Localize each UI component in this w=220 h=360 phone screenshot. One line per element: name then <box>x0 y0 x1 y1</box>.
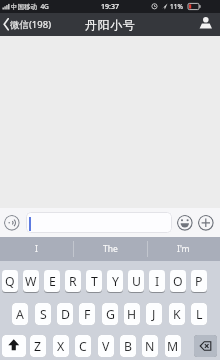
button[interactable]: Z <box>30 335 46 357</box>
button[interactable]: C <box>75 335 91 357</box>
button[interactable]: G <box>102 303 118 325</box>
button[interactable]: N <box>142 335 158 357</box>
button[interactable]: V <box>98 335 114 357</box>
staticText: The <box>103 243 118 255</box>
button[interactable]: P <box>191 270 207 292</box>
staticText: B <box>124 338 132 355</box>
button[interactable]: F <box>79 303 95 325</box>
button[interactable]: I'm <box>147 237 220 261</box>
staticText: R <box>69 273 77 290</box>
staticText: 微信(198) <box>10 18 52 31</box>
staticText: I'm <box>177 243 190 255</box>
button[interactable]: B <box>120 335 136 357</box>
button[interactable] <box>4 215 20 231</box>
staticText: 丹阳小号 <box>85 17 136 32</box>
button[interactable]: W <box>23 270 39 292</box>
staticText: Q <box>5 273 15 290</box>
staticText: Y <box>112 273 119 290</box>
staticText: G <box>106 306 115 323</box>
staticText: V <box>102 338 110 355</box>
button[interactable] <box>194 335 217 357</box>
button[interactable]: I <box>149 270 165 292</box>
staticText: N <box>145 338 155 355</box>
staticText: Z <box>34 338 42 355</box>
button[interactable]: L <box>191 303 207 325</box>
button[interactable]: R <box>65 270 81 292</box>
button[interactable]: U <box>128 270 144 292</box>
staticText: I <box>155 273 160 290</box>
button[interactable]: M <box>165 335 181 357</box>
staticText: 19:37 <box>101 2 119 12</box>
staticText: K <box>173 306 181 323</box>
staticText: O <box>173 273 183 290</box>
button[interactable]: The <box>74 237 147 261</box>
button[interactable]: Y <box>107 270 123 292</box>
button[interactable]: H <box>124 303 140 325</box>
staticText: W <box>25 273 37 290</box>
staticText: H <box>127 306 137 323</box>
staticText: J <box>152 306 156 323</box>
button[interactable] <box>198 215 214 231</box>
staticText: X <box>57 338 65 355</box>
button[interactable]: K <box>169 303 185 325</box>
staticText: P <box>195 273 203 290</box>
staticText: F <box>84 306 91 323</box>
staticText: L <box>196 306 203 323</box>
staticText: U <box>132 273 141 290</box>
staticText: D <box>61 306 70 323</box>
staticText: 11% <box>170 2 183 11</box>
staticText: 中国移动 4G <box>11 2 49 11</box>
button[interactable]: J <box>146 303 162 325</box>
button[interactable]: E <box>44 270 60 292</box>
button[interactable]: D <box>57 303 73 325</box>
staticText: I <box>35 243 38 255</box>
button[interactable]: O <box>170 270 186 292</box>
button[interactable] <box>26 212 172 233</box>
staticText: E <box>49 273 56 290</box>
staticText: A <box>16 306 24 323</box>
button[interactable]: T <box>86 270 102 292</box>
button[interactable] <box>2 335 26 357</box>
staticText: M <box>167 338 179 355</box>
button[interactable]: A <box>12 303 28 325</box>
staticText: T <box>91 273 98 290</box>
button[interactable] <box>177 215 193 231</box>
button[interactable]: X <box>53 335 69 357</box>
button[interactable]: I <box>0 237 73 261</box>
staticText: S <box>40 306 47 323</box>
button[interactable]: S <box>35 303 51 325</box>
staticText: C <box>79 338 87 355</box>
button[interactable]: Q <box>2 270 18 292</box>
